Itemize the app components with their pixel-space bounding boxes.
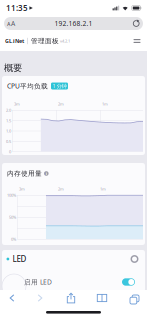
staticText: GL	[5, 37, 12, 45]
button[interactable]: Share	[61, 289, 81, 307]
staticText: 0%	[11, 237, 16, 242]
staticText: 11:35	[6, 3, 28, 13]
staticText: 1m	[100, 186, 106, 192]
button[interactable]: Tabs	[123, 289, 143, 307]
staticText: .	[12, 37, 13, 45]
staticText: 1.0	[6, 128, 11, 134]
staticText: 1.5	[6, 118, 11, 123]
staticText: v4.2.1	[60, 38, 70, 44]
staticText: 内存使用量	[7, 169, 42, 178]
staticText: 2.0	[6, 108, 11, 113]
staticText: 0	[9, 149, 11, 154]
button[interactable]: Menu	[130, 34, 144, 48]
staticText: 3m	[14, 101, 20, 107]
staticText: 概要	[4, 62, 22, 74]
staticText: 1 分钟	[52, 82, 66, 90]
staticText: i	[46, 171, 47, 176]
staticText: 2m	[58, 101, 64, 107]
button[interactable]: LED settings	[128, 253, 140, 265]
button[interactable]: Reload	[124, 17, 143, 30]
button[interactable]: Back	[2, 289, 22, 307]
button[interactable]: Text size	[4, 17, 23, 30]
staticText: 管理面板	[31, 37, 59, 45]
staticText: CPU平均负载	[7, 82, 48, 90]
button[interactable]: Enable LED	[122, 278, 135, 286]
staticText: 100%	[7, 193, 16, 198]
button[interactable]: Bookmarks	[92, 289, 112, 307]
staticText: iNet	[13, 37, 24, 45]
staticText: 2m	[58, 186, 64, 192]
button[interactable]: Forward	[30, 289, 50, 307]
staticText: 3m	[19, 186, 25, 192]
staticText: ᴀA	[7, 19, 15, 28]
staticText: 192.168.2.1	[54, 19, 92, 28]
staticText: LED	[12, 254, 26, 264]
staticText: 1m	[102, 101, 108, 107]
staticText: 50%	[9, 215, 16, 220]
staticText: 启用 LED	[24, 278, 52, 286]
staticText: 0.5	[6, 139, 11, 144]
